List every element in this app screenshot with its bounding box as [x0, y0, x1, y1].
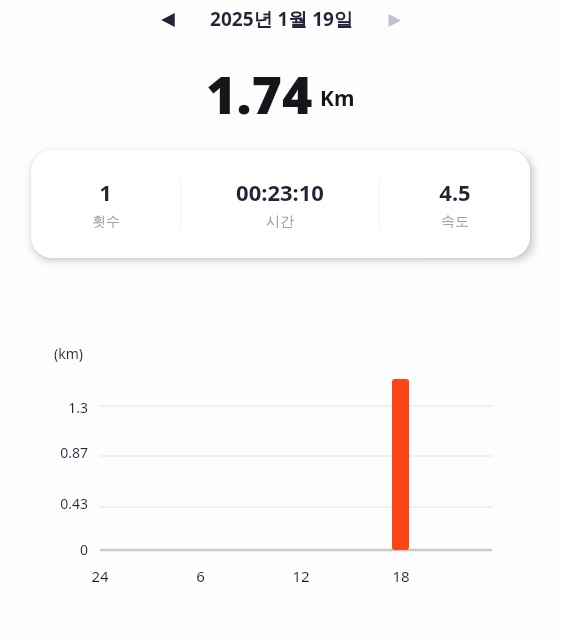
staticText: 0.87	[60, 443, 88, 462]
staticText: 6	[196, 566, 205, 586]
button[interactable]: Next day	[378, 4, 410, 36]
staticText: 횟수	[92, 213, 120, 231]
staticText: (km)	[54, 344, 83, 363]
staticText: 1.3	[68, 398, 88, 417]
staticText: 12	[292, 566, 310, 586]
button[interactable]: Previous day	[152, 4, 184, 36]
staticText: 24	[91, 566, 109, 586]
staticText: 18	[392, 566, 410, 586]
staticText: 시간	[266, 213, 294, 231]
button[interactable]: 4.5	[380, 150, 530, 258]
button[interactable]: 00:23:10	[181, 150, 379, 258]
button[interactable]: 1	[31, 150, 180, 258]
staticText: Km	[320, 84, 355, 113]
staticText: 1.74	[206, 58, 313, 120]
staticText: 2025년 1월 19일	[210, 6, 353, 32]
staticText: 0.43	[60, 494, 88, 513]
staticText: 속도	[441, 213, 469, 231]
button[interactable]: 2025년 1월 19일	[196, 2, 366, 36]
staticText: 4.5	[439, 177, 471, 207]
button[interactable]: 1	[31, 150, 530, 258]
staticText: 1	[99, 177, 112, 207]
staticText: 0	[79, 540, 88, 559]
staticText: 00:23:10	[236, 177, 324, 207]
